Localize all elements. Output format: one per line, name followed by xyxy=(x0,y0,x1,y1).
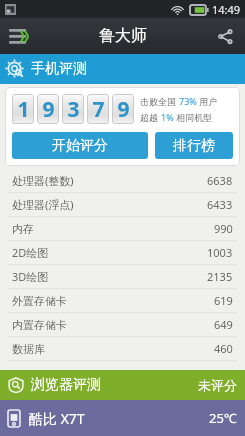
staticText: 排行榜 xyxy=(173,137,215,155)
staticText: 1% xyxy=(161,111,174,123)
staticText: 开始评分 xyxy=(52,137,108,155)
button[interactable]: 浏览器评测 xyxy=(0,370,245,400)
staticText: 处理器(浮点) xyxy=(12,197,74,212)
staticText: 击败全国 xyxy=(140,95,179,107)
staticText: 1 xyxy=(17,95,30,124)
staticText: 用户 xyxy=(197,95,218,107)
staticText: 3D绘图 xyxy=(12,269,49,284)
staticText: 手机评测 xyxy=(31,60,87,78)
button[interactable]: Share xyxy=(205,18,245,54)
staticText: 6638 xyxy=(207,173,233,188)
button[interactable]: 内存 xyxy=(0,217,245,240)
staticText: 2D绘图 xyxy=(12,245,49,260)
staticText: 73% xyxy=(179,95,197,107)
button[interactable]: 数据库 xyxy=(0,337,245,360)
staticText: 未评分 xyxy=(198,377,237,393)
staticText: 9 xyxy=(117,95,130,124)
button[interactable]: 处理器(浮点) xyxy=(0,193,245,216)
button[interactable]: 排行榜 xyxy=(155,132,233,159)
staticText: 3 xyxy=(67,95,80,124)
button[interactable]: Menu xyxy=(0,18,40,54)
staticText: 990 xyxy=(214,221,233,236)
staticText: 25℃ xyxy=(209,409,237,427)
button[interactable]: 酷比 X7T xyxy=(0,400,245,436)
button[interactable]: 处理器(整数) xyxy=(0,169,245,192)
button[interactable]: 内置存储卡 xyxy=(0,313,245,336)
staticText: 处理器(整数) xyxy=(12,173,74,188)
staticText: 6433 xyxy=(207,197,233,212)
staticText: 数据库 xyxy=(12,342,45,356)
staticText: 9 xyxy=(42,95,55,124)
button[interactable]: 2D绘图 xyxy=(0,241,245,264)
staticText: 相同机型 xyxy=(174,111,213,123)
staticText: 1003 xyxy=(207,245,233,260)
staticText: 内置存储卡 xyxy=(12,318,67,332)
staticText: 浏览器评测 xyxy=(31,376,101,394)
button[interactable]: 外置存储卡 xyxy=(0,289,245,312)
staticText: 14:49 xyxy=(212,2,241,17)
staticText: 619 xyxy=(214,293,233,308)
button[interactable]: 3D绘图 xyxy=(0,265,245,288)
staticText: 酷比 X7T xyxy=(29,409,85,428)
staticText: 7 xyxy=(92,95,105,124)
staticText: 460 xyxy=(214,341,233,356)
staticText: 649 xyxy=(214,317,233,332)
staticText: 外置存储卡 xyxy=(12,294,67,308)
staticText: 内存 xyxy=(12,222,34,236)
button[interactable]: 开始评分 xyxy=(12,132,148,159)
staticText: 超越 xyxy=(140,111,161,123)
staticText: 2135 xyxy=(207,269,233,284)
staticText: 鲁大师 xyxy=(99,26,147,46)
